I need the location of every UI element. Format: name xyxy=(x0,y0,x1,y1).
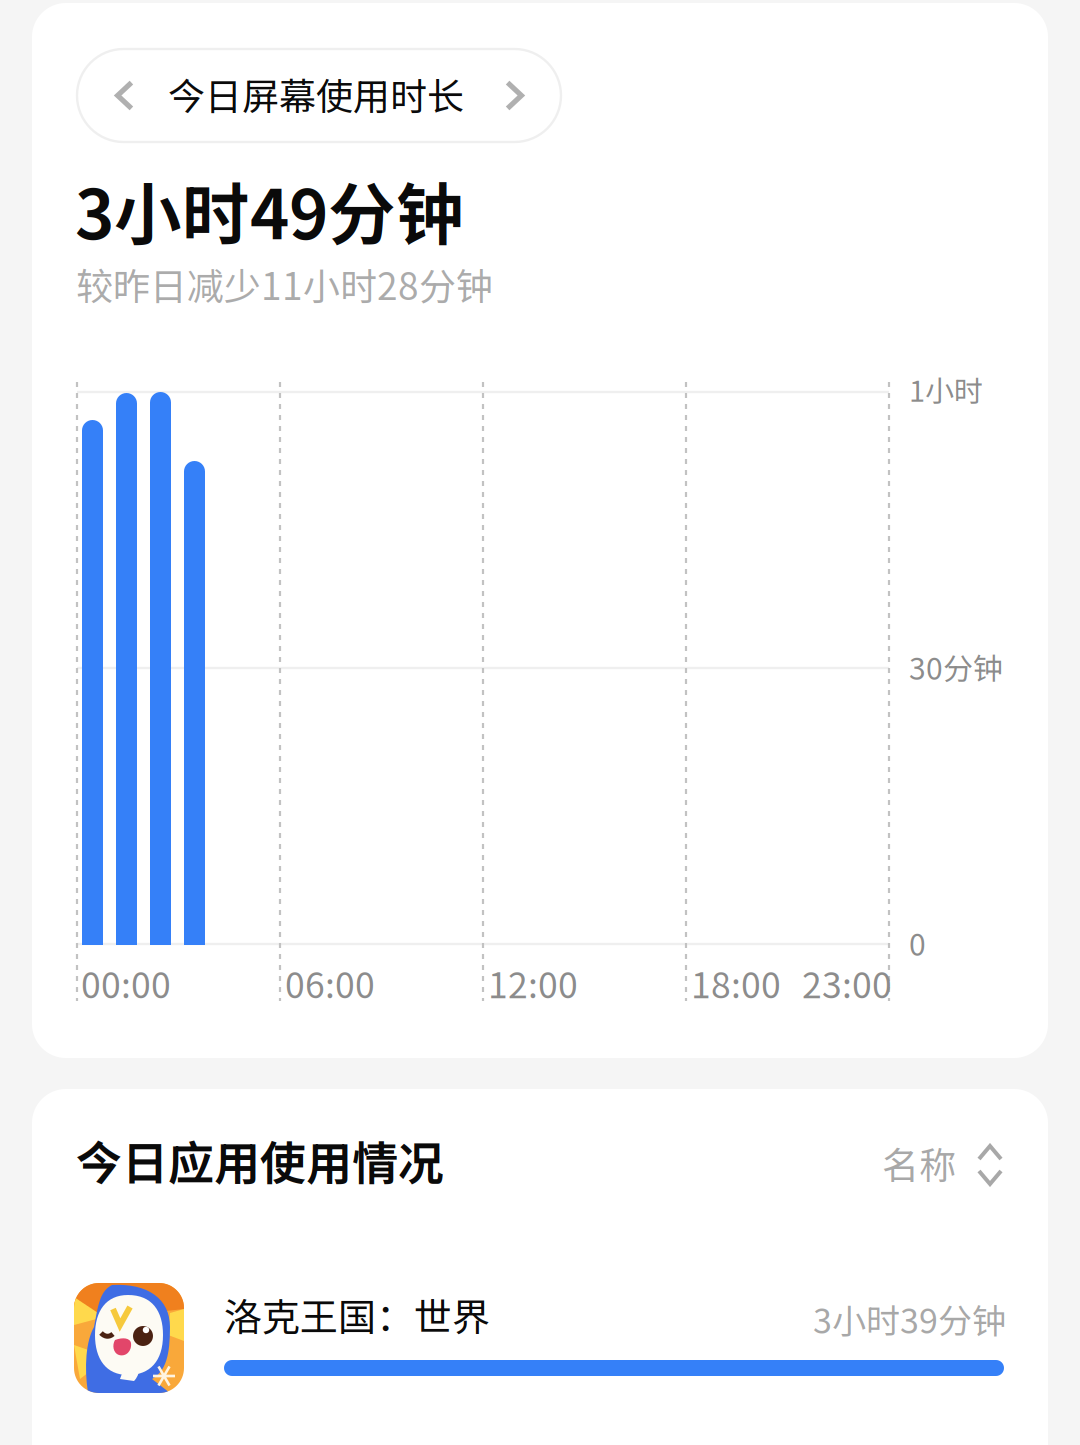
staticText: 30分钟 xyxy=(909,645,1003,688)
button[interactable]: 按名称排序 xyxy=(884,1141,1006,1197)
staticText: 00:00 xyxy=(81,957,171,1008)
staticText: 3小时39分钟 xyxy=(813,1294,1006,1343)
staticText: 今日屏幕使用时长 xyxy=(168,67,464,121)
staticText: 洛克王国：世界 xyxy=(224,1287,490,1342)
staticText: 12:00 xyxy=(488,957,578,1008)
staticText: 0 xyxy=(909,921,926,964)
button[interactable]: 今日屏幕使用时长 xyxy=(77,49,561,142)
staticText: 1小时 xyxy=(909,368,983,410)
staticText: 今日应用使用情况 xyxy=(76,1127,444,1194)
staticText: 23:00 xyxy=(802,957,892,1008)
button[interactable]: 洛克王国：世界 xyxy=(74,1283,1006,1409)
staticText: 较昨日减少11小时28分钟 xyxy=(76,257,493,311)
staticText: 06:00 xyxy=(285,957,375,1008)
staticText: 名称 xyxy=(882,1136,956,1190)
staticText: 18:00 xyxy=(691,957,781,1008)
staticText: 3小时49分钟 xyxy=(75,161,464,259)
